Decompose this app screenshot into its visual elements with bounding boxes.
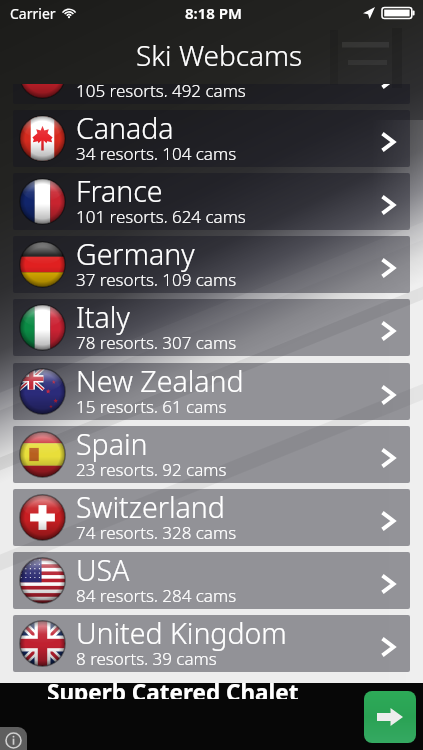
button[interactable]: Switzerland <box>13 489 410 546</box>
staticText: Superb Catered Chalet <box>47 683 299 699</box>
staticText: Spain <box>76 426 148 464</box>
staticText: 34 resorts, 104 cams <box>76 142 237 160</box>
button[interactable]: Spain <box>13 426 410 483</box>
button[interactable]: USA <box>13 552 410 609</box>
staticText: New Zealand <box>76 363 244 401</box>
button[interactable]: New Zealand <box>13 363 410 420</box>
staticText: Carrier <box>10 4 56 23</box>
button[interactable]: Canada <box>13 110 410 167</box>
staticText: Germany <box>76 236 195 274</box>
button[interactable]: Italy <box>13 299 410 356</box>
staticText: Switzerland <box>76 489 225 527</box>
staticText: 15 resorts, 61 cams <box>76 395 227 413</box>
button[interactable]: Superb Catered Chalet <box>0 683 423 750</box>
staticText: 105 resorts, 492 cams <box>76 84 246 97</box>
button[interactable]: Germany <box>13 236 410 293</box>
staticText: 78 resorts, 307 cams <box>76 331 237 349</box>
staticText: USA <box>76 552 130 590</box>
staticText: 74 resorts, 328 cams <box>76 521 237 539</box>
staticText: Canada <box>76 110 174 148</box>
staticText: Italy <box>76 299 130 337</box>
staticText: United Kingdom <box>76 615 287 653</box>
button[interactable]: France <box>13 173 410 230</box>
staticText: France <box>76 173 163 211</box>
button[interactable]: Open advertisement <box>364 691 416 743</box>
staticText: 23 resorts, 92 cams <box>76 458 227 476</box>
button[interactable]: United Kingdom <box>13 615 410 672</box>
staticText: 84 resorts, 284 cams <box>76 584 237 602</box>
staticText: 37 resorts, 109 cams <box>76 268 237 286</box>
staticText: 101 resorts, 624 cams <box>76 205 246 223</box>
staticText: 8:18 PM <box>185 3 242 23</box>
staticText: Ski Webcams <box>136 36 303 74</box>
button[interactable]: Ad information <box>0 727 27 750</box>
staticText: 8 resorts, 39 cams <box>76 647 217 665</box>
button[interactable]: Austria <box>13 84 410 104</box>
